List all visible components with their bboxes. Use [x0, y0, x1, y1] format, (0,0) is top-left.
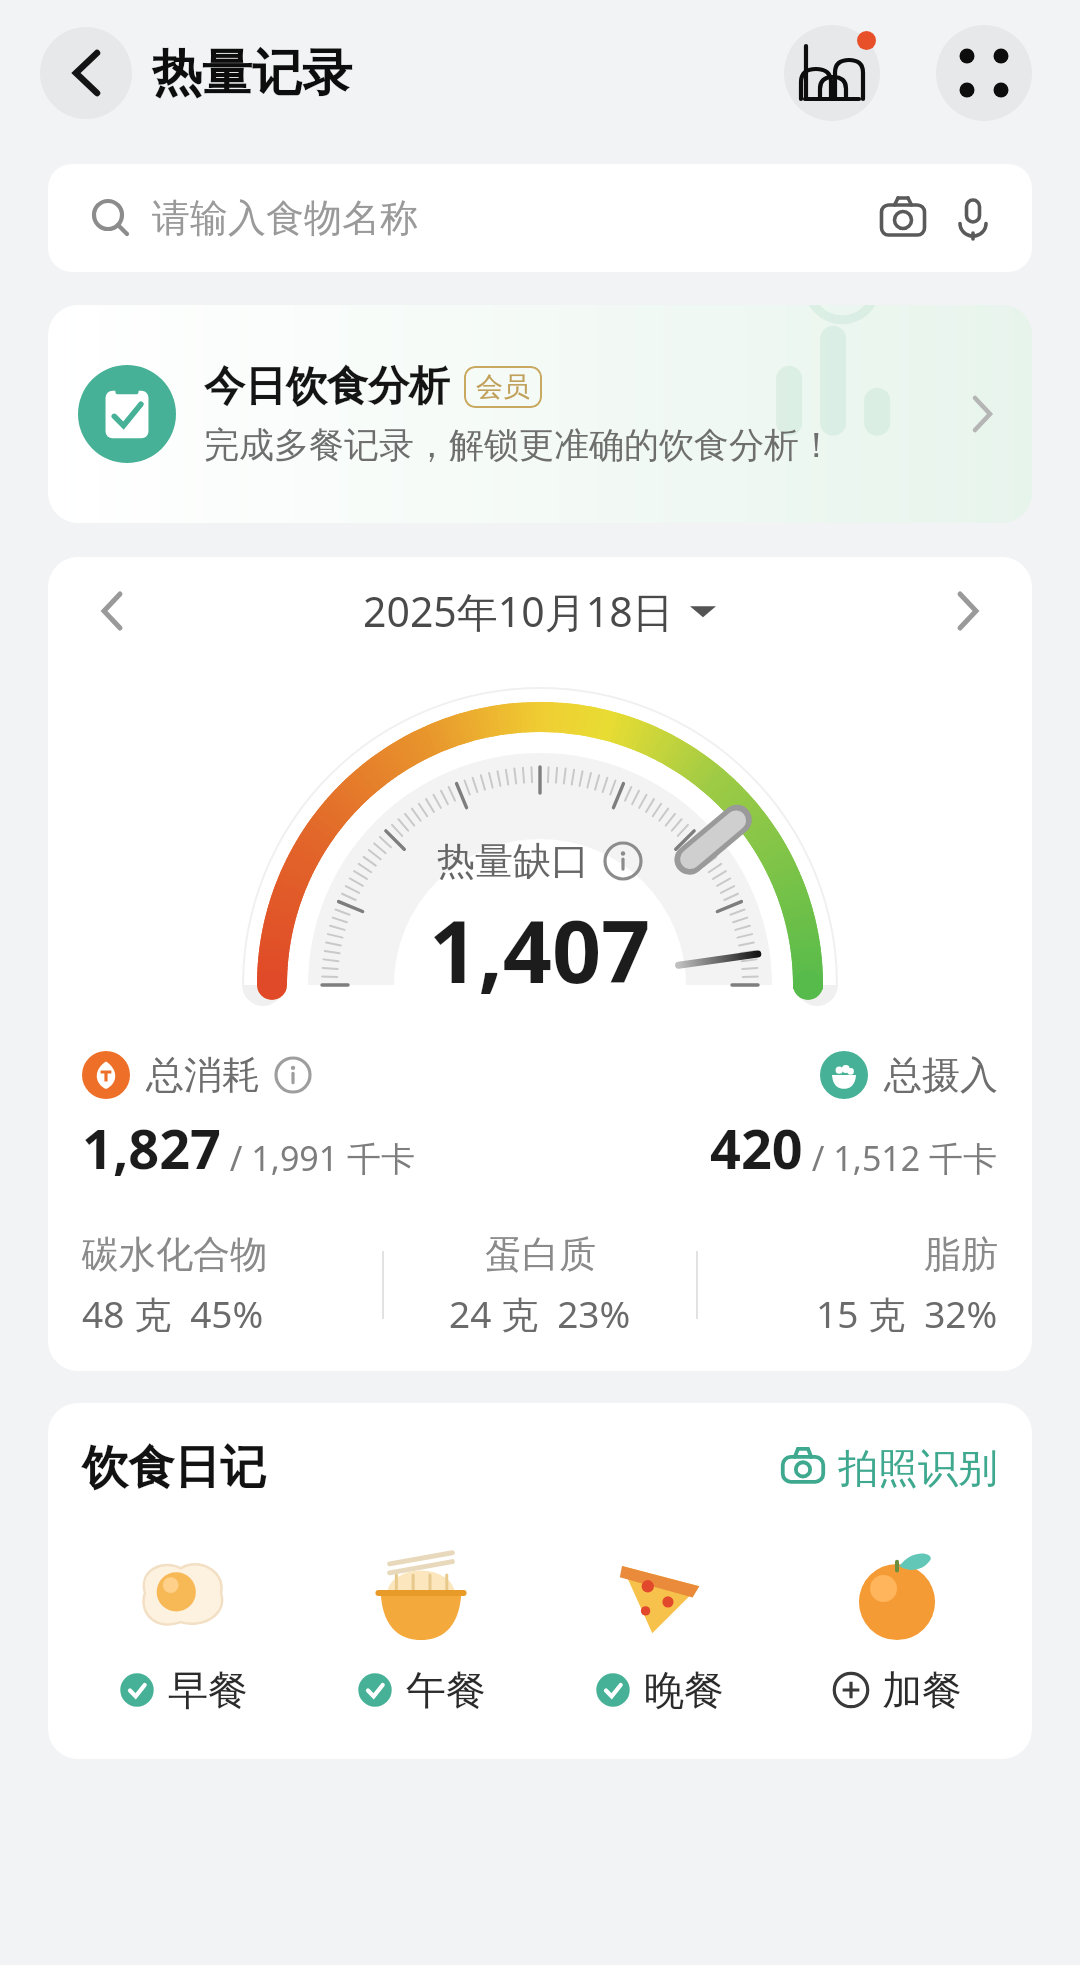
- button[interactable]: 晚餐: [540, 1537, 778, 1715]
- button[interactable]: Total burn info: [274, 1056, 312, 1094]
- staticText: 1,827: [82, 1111, 221, 1185]
- staticText: 会员: [476, 370, 530, 404]
- staticText: / 1,991 千卡: [221, 1135, 416, 1181]
- button[interactable]: 2025年10月18日: [363, 583, 716, 639]
- staticText: 24 克 23%: [449, 1288, 631, 1339]
- staticText: 碳水化合物: [82, 1231, 267, 1278]
- staticText: 晚餐: [644, 1665, 724, 1715]
- button[interactable]: Previous day: [82, 581, 142, 641]
- staticText: 15 克 32%: [816, 1288, 998, 1339]
- staticText: 早餐: [168, 1665, 248, 1715]
- button[interactable]: Next day: [938, 581, 998, 641]
- staticText: 蛋白质: [485, 1231, 596, 1278]
- button[interactable]: 请输入食物名称: [48, 164, 1032, 272]
- staticText: 拍照识别: [838, 1443, 998, 1493]
- staticText: 热量缺口: [437, 837, 589, 885]
- button[interactable]: Voice input: [938, 183, 1008, 253]
- staticText: 脂肪: [924, 1231, 998, 1278]
- staticText: / 1,512 千卡: [803, 1135, 998, 1181]
- staticText: 总摄入: [884, 1051, 998, 1099]
- button[interactable]: Camera: [868, 183, 938, 253]
- button[interactable]: 今日饮食分析: [48, 305, 1032, 523]
- button[interactable]: Back: [40, 27, 132, 119]
- staticText: 48 克 45%: [82, 1288, 264, 1339]
- staticText: 2025年10月18日: [363, 583, 674, 639]
- staticText: 完成多餐记录，解锁更准确的饮食分析！: [204, 423, 834, 467]
- staticText: 加餐: [882, 1665, 962, 1715]
- button[interactable]: 午餐: [302, 1537, 540, 1715]
- button[interactable]: Calorie gap info: [603, 841, 643, 881]
- staticText: 420: [710, 1111, 803, 1185]
- staticText: 午餐: [406, 1665, 486, 1715]
- button[interactable]: More options: [936, 25, 1032, 121]
- button[interactable]: 拍照识别: [780, 1443, 998, 1493]
- button[interactable]: 加餐: [778, 1537, 1016, 1715]
- staticText: 总消耗: [146, 1051, 260, 1099]
- staticText: 请输入食物名称: [152, 194, 418, 242]
- staticText: 1,407: [429, 891, 651, 1008]
- staticText: 今日饮食分析: [204, 361, 450, 413]
- button[interactable]: Statistics: [784, 25, 880, 121]
- staticText: 饮食日记: [82, 1439, 266, 1497]
- button[interactable]: 早餐: [64, 1537, 302, 1715]
- staticText: 热量记录: [152, 42, 352, 105]
